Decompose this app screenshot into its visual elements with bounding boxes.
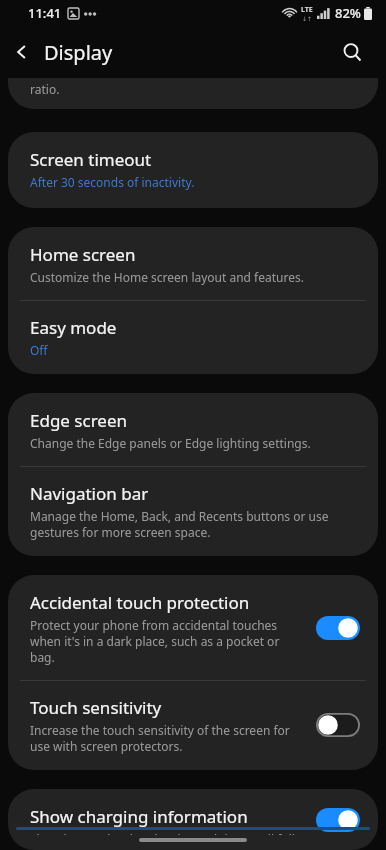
- staticText: After 30 seconds of inactivity.: [30, 174, 195, 190]
- staticText: Protect your phone from accidental touch…: [30, 617, 304, 665]
- staticText: Show charging information: [30, 805, 248, 828]
- staticText: Increase the touch sensitivity of the sc…: [30, 722, 304, 754]
- staticText: Touch sensitivity: [30, 696, 162, 719]
- staticText: Accidental touch protection: [30, 591, 250, 614]
- staticText: Edge screen: [30, 409, 128, 432]
- staticText: ↓↑: [302, 15, 313, 22]
- staticText: Easy mode: [30, 316, 117, 339]
- staticText: Off: [30, 342, 48, 358]
- staticText: Change the Edge panels or Edge lighting …: [30, 435, 311, 451]
- button[interactable]: Toggle on: [316, 616, 360, 640]
- button[interactable]: Edge screen: [8, 393, 378, 466]
- staticText: Show battery level and estimated time un…: [30, 831, 304, 835]
- button[interactable]: Search: [332, 32, 372, 72]
- staticText: ratio.: [30, 81, 60, 97]
- staticText: LTE: [301, 5, 313, 15]
- button[interactable]: Screen timeout: [8, 132, 378, 208]
- button[interactable]: Accidental touch protection: [8, 575, 378, 680]
- staticText: Display: [44, 39, 113, 66]
- button[interactable]: Easy mode: [8, 301, 378, 374]
- button[interactable]: ratio.: [8, 78, 378, 109]
- button[interactable]: Touch sensitivity: [8, 681, 378, 770]
- staticText: 82%: [335, 4, 361, 22]
- button[interactable]: Toggle off: [316, 713, 360, 737]
- button[interactable]: Navigation bar: [8, 467, 378, 556]
- staticText: Manage the Home, Back, and Recents butto…: [30, 508, 360, 540]
- staticText: Home screen: [30, 243, 136, 266]
- staticText: 11:41: [28, 4, 62, 22]
- button[interactable]: Home screen: [8, 227, 378, 300]
- button[interactable]: Back: [0, 30, 44, 74]
- staticText: Screen timeout: [30, 148, 152, 171]
- staticText: Customize the Home screen layout and fea…: [30, 269, 304, 285]
- button[interactable]: Show charging information: [8, 789, 378, 850]
- staticText: Navigation bar: [30, 482, 149, 505]
- button[interactable]: Toggle on: [316, 808, 360, 832]
